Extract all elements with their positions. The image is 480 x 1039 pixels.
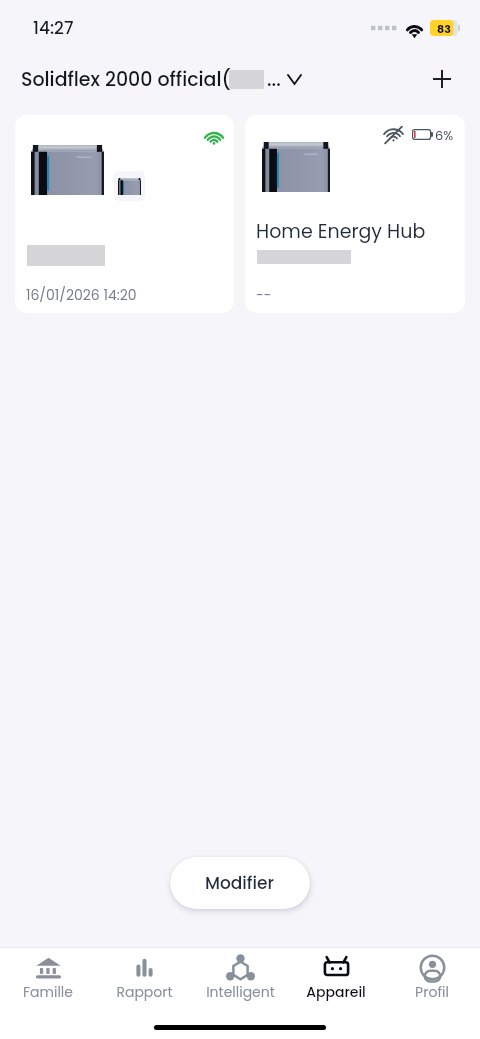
button[interactable]: Rapport <box>96 948 192 1004</box>
staticText: Solidflex 2000 official( <box>21 66 231 93</box>
staticText: 83 <box>437 21 451 36</box>
staticText: Intelligent <box>206 982 275 1002</box>
button[interactable]: Intelligent <box>192 948 288 1004</box>
button[interactable]: Famille <box>0 948 96 1004</box>
staticText: Modifier <box>205 871 275 895</box>
staticText: 14:27 <box>33 16 74 40</box>
staticText: -- <box>256 285 272 305</box>
button[interactable]: Solidflex 2000 official( <box>21 66 301 93</box>
staticText: Appareil <box>306 982 366 1002</box>
button[interactable]: Modifier <box>170 857 310 909</box>
staticText: Profil <box>415 982 449 1002</box>
button[interactable]: Profil <box>384 948 480 1004</box>
staticText: ... <box>267 66 281 93</box>
button[interactable]: Appareil <box>288 948 384 1004</box>
staticText: Famille <box>23 982 73 1002</box>
button[interactable]: 6% <box>245 115 465 313</box>
button[interactable]: Add device <box>422 59 462 99</box>
staticText: Rapport <box>116 982 173 1002</box>
button[interactable]: 16/01/2026 14:20 <box>15 115 234 313</box>
staticText: 6% <box>435 126 454 144</box>
staticText: 16/01/2026 14:20 <box>26 285 137 305</box>
staticText: Home Energy Hub <box>256 218 426 245</box>
